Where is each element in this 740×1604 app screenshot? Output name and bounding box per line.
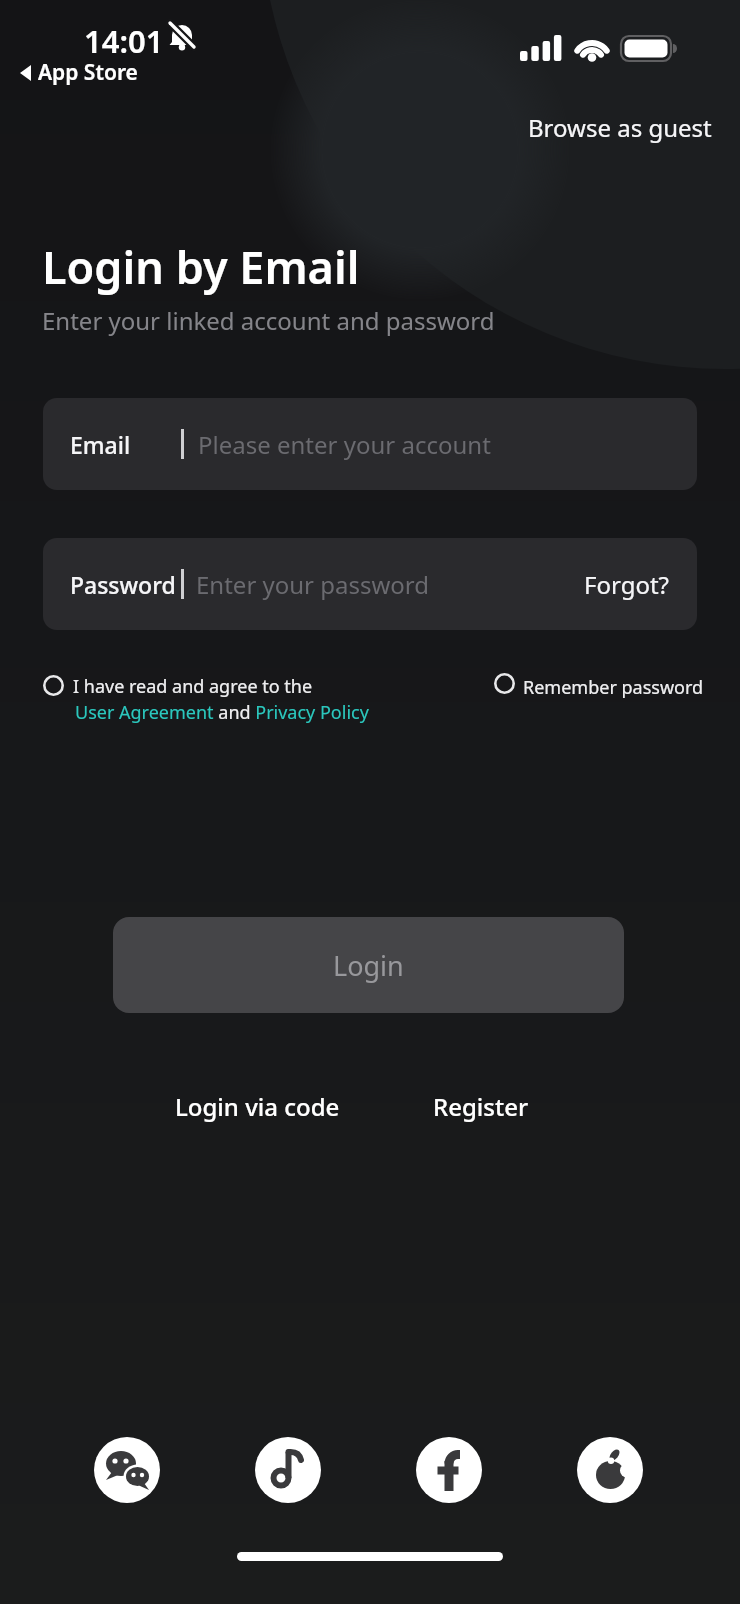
staticText: 14:01 — [84, 20, 164, 62]
button[interactable]: Forgot? — [584, 568, 670, 601]
staticText: Password — [70, 569, 176, 600]
staticText: Forgot? — [584, 568, 670, 601]
staticText: Browse as guest — [528, 111, 712, 144]
button[interactable]: Browse as guest — [412, 109, 712, 145]
staticText: Remember password — [523, 675, 704, 700]
staticText: App Store — [38, 58, 138, 87]
button[interactable]: Login — [113, 917, 624, 1013]
button[interactable]: Remember password — [484, 663, 704, 705]
button[interactable]: I have read and agree to the — [33, 665, 463, 731]
button[interactable] — [255, 1437, 321, 1503]
staticText: Enter your linked account and password — [42, 304, 495, 337]
button[interactable] — [94, 1437, 160, 1503]
staticText: Login — [333, 947, 404, 984]
staticText: Login by Email — [42, 236, 360, 297]
button[interactable]: App Store — [18, 58, 138, 87]
button[interactable]: Password — [43, 538, 697, 630]
staticText: Register — [433, 1090, 529, 1123]
staticText: Email — [70, 429, 131, 460]
staticText: Please enter your account — [198, 428, 491, 461]
button[interactable]: Login via code — [157, 1085, 357, 1127]
staticText: User Agreement and Privacy Policy — [75, 700, 369, 725]
button[interactable] — [577, 1437, 643, 1503]
staticText: Login via code — [175, 1090, 340, 1123]
button[interactable] — [416, 1437, 482, 1503]
staticText: I have read and agree to the — [73, 674, 313, 699]
staticText: Enter your password — [196, 568, 430, 601]
button[interactable]: Register — [381, 1085, 581, 1127]
button[interactable]: Email — [43, 398, 697, 490]
